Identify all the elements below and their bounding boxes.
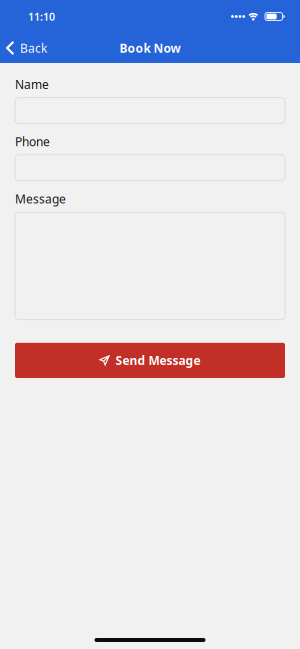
staticText: 11:10 bbox=[28, 9, 55, 24]
staticText: Back bbox=[20, 40, 47, 56]
button[interactable]: Back bbox=[0, 33, 55, 63]
staticText: Phone bbox=[15, 134, 50, 150]
staticText: Message bbox=[15, 191, 66, 207]
button[interactable]: Send Message bbox=[15, 343, 285, 378]
staticText: Name bbox=[15, 76, 49, 92]
staticText: Send Message bbox=[116, 352, 201, 368]
staticText: Book Now bbox=[119, 40, 180, 56]
